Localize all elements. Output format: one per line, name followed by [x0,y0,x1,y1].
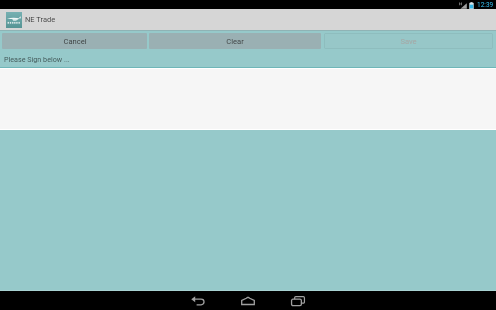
staticText: Clear [226,37,244,46]
staticText: 12:39 [477,1,494,9]
staticText: Please Sign below ... [4,55,70,63]
staticText: Save [400,37,417,46]
staticText: Cancel [63,37,87,46]
button[interactable]: Home [236,291,260,310]
button[interactable]: Back [186,291,210,310]
button[interactable]: Cancel [2,33,147,49]
button[interactable]: Save [324,33,493,49]
button[interactable]: Recent apps [286,291,310,310]
staticText: NE Trade [25,15,56,24]
button[interactable]: Clear [149,33,321,49]
